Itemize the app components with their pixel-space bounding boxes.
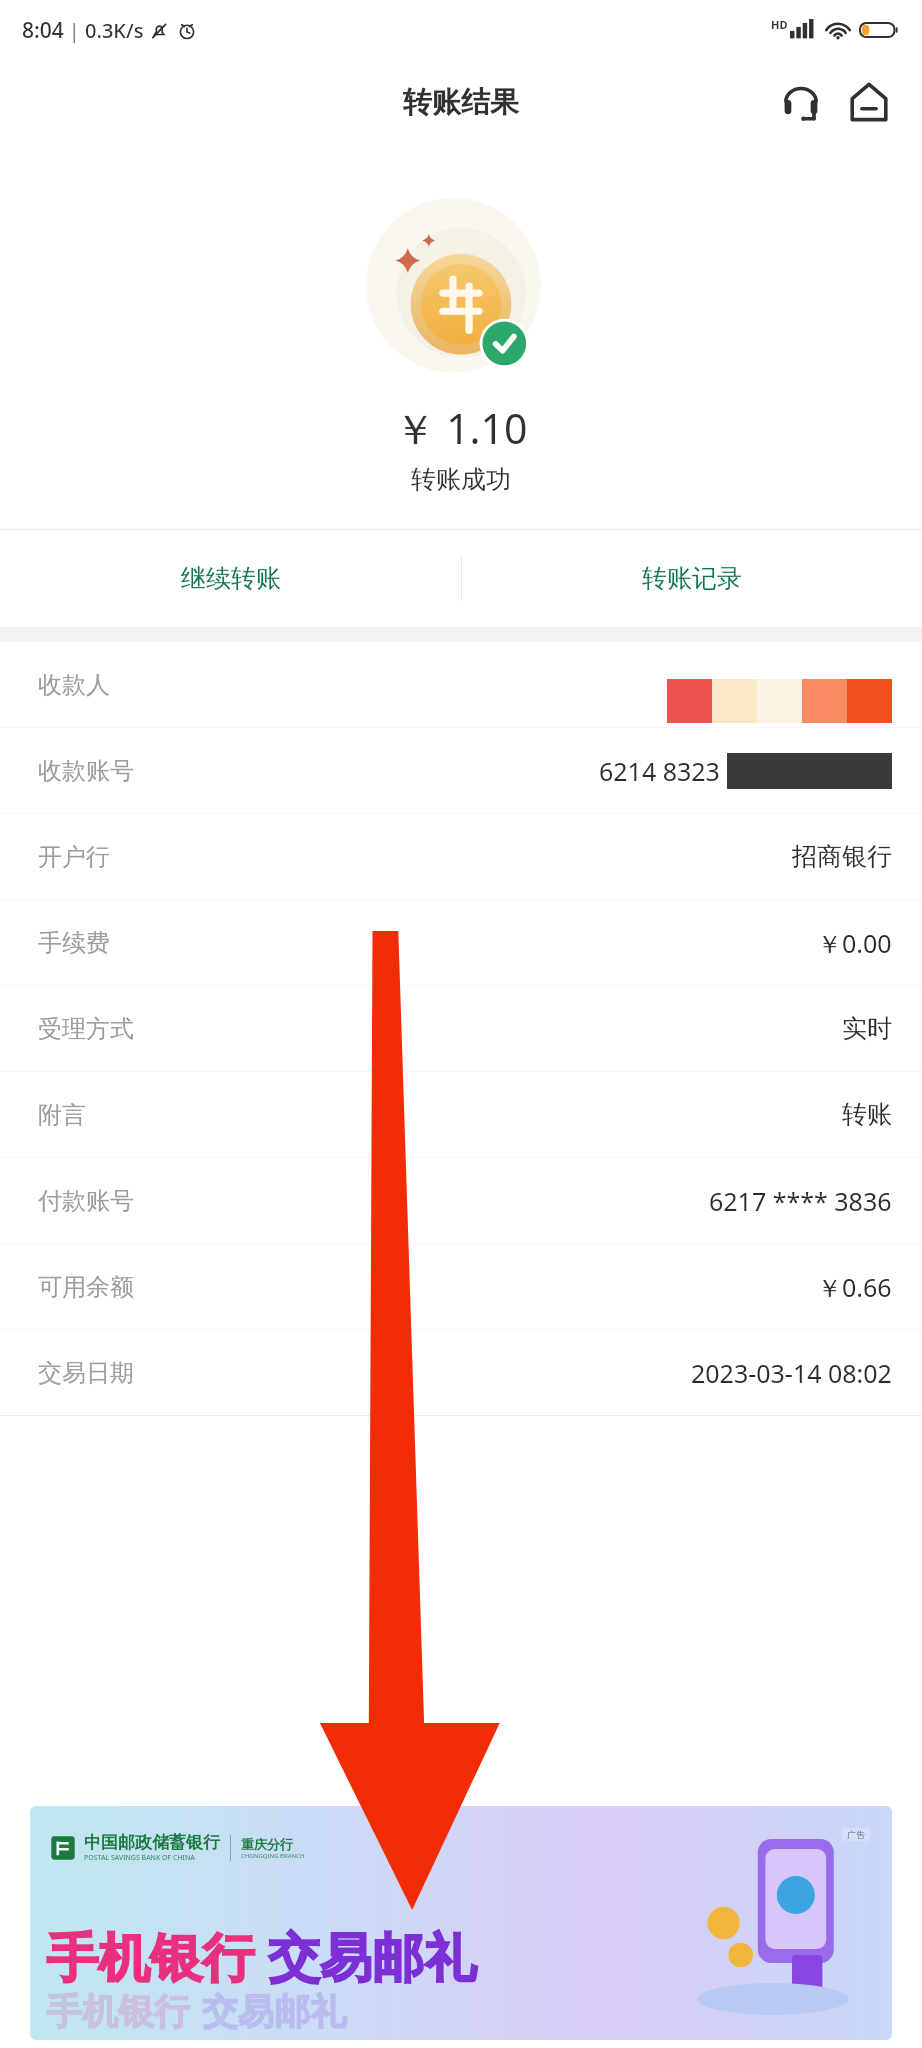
staticText: ￥0.66 (817, 1270, 892, 1304)
staticText: 交易邮礼 (202, 1989, 346, 2034)
staticText: | (64, 18, 85, 44)
staticText: 附言 (38, 1100, 86, 1130)
staticText: 转账记录 (642, 563, 742, 594)
staticText: 付款账号 (38, 1186, 134, 1216)
staticText: 转账结果 (403, 84, 519, 121)
staticText: 8:04 (22, 16, 64, 45)
staticText: 继续转账 (181, 563, 281, 594)
staticText: ￥0.00 (817, 926, 892, 960)
button[interactable]: 继续转账 (0, 530, 461, 627)
staticText: 广告 (847, 1829, 865, 1840)
button[interactable]: 手续费 (0, 900, 922, 985)
staticText: ￥ 1.10 (0, 400, 922, 456)
button[interactable]: 开户行 (0, 814, 922, 899)
staticText: 收款人 (38, 670, 110, 700)
button[interactable]: Home (840, 73, 898, 131)
staticText: CHONGQING BRANCH (241, 1852, 305, 1860)
button[interactable]: 付款账号 (0, 1158, 922, 1243)
staticText: 重庆分行 (241, 1836, 293, 1852)
staticText: 实时 (842, 1013, 892, 1044)
staticText: POSTAL SAVINGS BANK OF CHINA (84, 1853, 195, 1863)
staticText: 0.3K/s (85, 17, 144, 44)
staticText: 收款账号 (38, 756, 134, 786)
staticText: 交易日期 (38, 1358, 134, 1388)
staticText: 转账成功 (0, 464, 922, 495)
staticText: 中国邮政储蓄银行 (84, 1832, 220, 1853)
staticText: 开户行 (38, 842, 110, 872)
staticText: 手续费 (38, 928, 110, 958)
staticText: 招商银行 (792, 841, 892, 872)
button[interactable]: 交易日期 (0, 1330, 922, 1415)
staticText: 交易邮礼 (268, 1926, 476, 1992)
staticText: HD (771, 17, 788, 32)
button[interactable]: 附言 (0, 1072, 922, 1157)
staticText: 手机银行 (46, 1989, 190, 2034)
staticText: 6217 **** 3836 (709, 1184, 892, 1218)
button[interactable]: 收款账号 (0, 728, 922, 813)
staticText: 转账 (842, 1099, 892, 1130)
staticText: 手机银行 (46, 1926, 254, 1992)
button[interactable]: 手机银行 交易邮礼 广告 (30, 1806, 892, 2040)
staticText: 可用余额 (38, 1272, 134, 1302)
button[interactable]: 收款人 (0, 642, 922, 727)
staticText: 受理方式 (38, 1014, 134, 1044)
button[interactable]: 转账记录 (461, 530, 922, 627)
button[interactable]: 受理方式 (0, 986, 922, 1071)
button[interactable]: 可用余额 (0, 1244, 922, 1329)
staticText: 2023-03-14 08:02 (691, 1356, 892, 1390)
button[interactable]: Customer service (772, 73, 830, 131)
staticText: 6214 8323 (599, 754, 727, 788)
